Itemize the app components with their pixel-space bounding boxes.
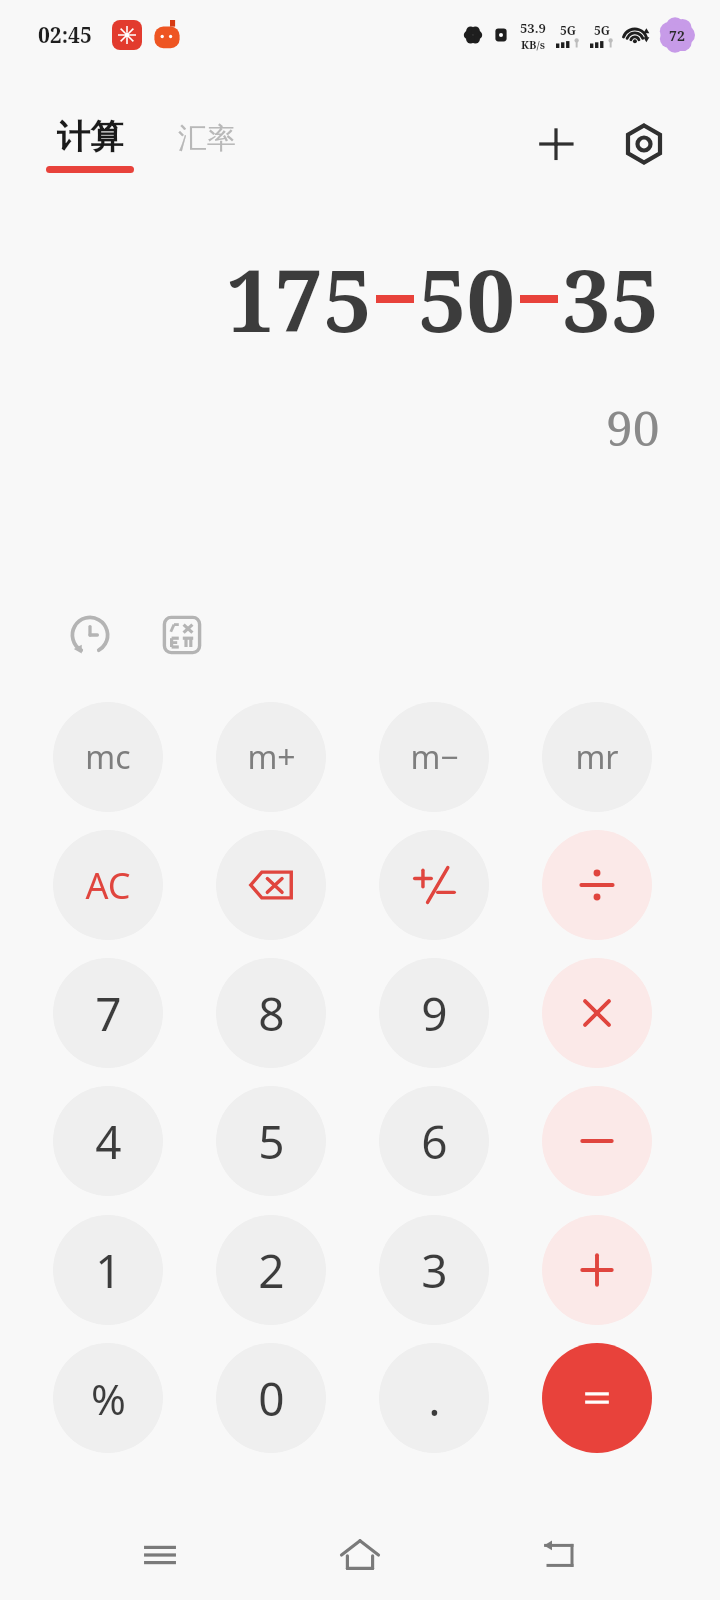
button[interactable]: 1 <box>53 1215 163 1325</box>
staticText: 2 <box>258 1239 285 1302</box>
staticText: 5G <box>594 22 611 38</box>
button[interactable]: Divide <box>542 830 652 940</box>
button[interactable]: 汇率 <box>172 116 242 161</box>
staticText: 汇率 <box>178 120 236 157</box>
button[interactable]: Plus <box>542 1215 652 1325</box>
staticText: 02:45 <box>38 21 92 50</box>
staticText: KB/s <box>521 37 545 52</box>
button[interactable]: Home <box>320 1515 400 1595</box>
button[interactable]: 计算 <box>42 110 138 179</box>
staticText: 9 <box>421 982 448 1045</box>
staticText: 53.9 <box>520 19 546 37</box>
button[interactable]: Minus <box>542 1086 652 1196</box>
staticText: 90 <box>606 395 660 460</box>
button[interactable]: Equals <box>542 1343 652 1453</box>
button[interactable]: 5 <box>216 1086 326 1196</box>
staticText: 计算 <box>57 116 123 158</box>
button[interactable]: Back <box>520 1515 600 1595</box>
button[interactable]: 8 <box>216 958 326 1068</box>
button[interactable]: Backspace <box>216 830 326 940</box>
button[interactable]: 3 <box>379 1215 489 1325</box>
staticText: 0 <box>258 1367 285 1430</box>
staticText: mr <box>575 735 619 779</box>
staticText: 6 <box>421 1110 448 1173</box>
staticText: m− <box>410 735 459 779</box>
staticText: 5G <box>560 22 577 38</box>
button[interactable]: Plus minus <box>379 830 489 940</box>
button[interactable]: Recents <box>120 1515 200 1595</box>
staticText: 72 <box>669 26 685 45</box>
staticText: mc <box>85 735 131 779</box>
button[interactable]: 6 <box>379 1086 489 1196</box>
staticText: % <box>91 1370 126 1427</box>
staticText: . <box>428 1367 441 1430</box>
button[interactable]: Multiply <box>542 958 652 1068</box>
button[interactable]: 7 <box>53 958 163 1068</box>
button[interactable]: Expand <box>528 116 584 172</box>
button[interactable]: AC <box>53 830 163 940</box>
staticText: 1 <box>95 1239 122 1302</box>
button[interactable]: 4 <box>53 1086 163 1196</box>
button[interactable]: . <box>379 1343 489 1453</box>
button[interactable]: mr <box>542 702 652 812</box>
button[interactable]: History <box>55 600 125 670</box>
button[interactable]: Scientific <box>147 600 217 670</box>
staticText: 7 <box>95 982 122 1045</box>
button[interactable]: 0 <box>216 1343 326 1453</box>
staticText: m+ <box>247 735 296 779</box>
staticText: 50 <box>418 240 516 357</box>
button[interactable]: 9 <box>379 958 489 1068</box>
button[interactable]: 2 <box>216 1215 326 1325</box>
button[interactable]: % <box>53 1343 163 1453</box>
staticText: 3 <box>421 1239 448 1302</box>
button[interactable]: mc <box>53 702 163 812</box>
button[interactable]: m+ <box>216 702 326 812</box>
staticText: 5 <box>258 1110 285 1173</box>
staticText: 35 <box>562 240 660 357</box>
staticText: AC <box>85 861 131 910</box>
button[interactable]: m− <box>379 702 489 812</box>
staticText: 175 <box>226 240 372 357</box>
staticText: 8 <box>258 982 285 1045</box>
button[interactable]: Settings <box>616 116 672 172</box>
staticText: 4 <box>95 1110 122 1173</box>
